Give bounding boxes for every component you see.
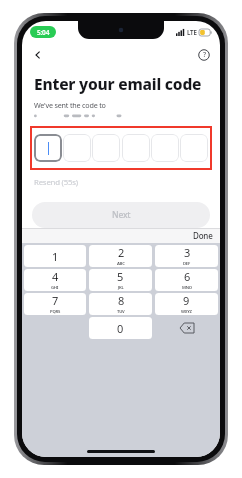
staticText: WXYZ [181, 309, 192, 315]
staticText: 1 [52, 249, 59, 264]
button[interactable]: Digit 5 [151, 134, 179, 162]
button[interactable]: 1 [24, 245, 86, 267]
staticText: PQRS [50, 309, 61, 315]
button[interactable]: Digit 1 [34, 134, 62, 162]
button[interactable]: Digit 3 [92, 134, 120, 162]
staticText: MNO [182, 285, 192, 291]
staticText: GHI [51, 285, 59, 291]
button[interactable]: Help [194, 45, 214, 65]
staticText: JKL [118, 285, 124, 291]
button[interactable]: Done [193, 230, 213, 241]
button[interactable]: Digit 2 [63, 134, 91, 162]
button[interactable]: Next [32, 202, 210, 228]
staticText: 5 [117, 269, 124, 284]
staticText: ABC [117, 261, 125, 267]
button[interactable]: 6 [155, 269, 218, 291]
button[interactable]: 9 [155, 293, 218, 315]
button[interactable]: 7 [24, 293, 86, 315]
staticText: Done [193, 230, 213, 241]
staticText: ? [203, 50, 206, 60]
staticText: TUV [117, 309, 125, 315]
button[interactable]: 8 [89, 293, 152, 315]
button[interactable]: Back [28, 45, 48, 65]
staticText: Enter your email code [34, 73, 202, 94]
staticText: LTE [187, 28, 197, 36]
staticText: 3 [184, 245, 191, 260]
button[interactable]: 0 [89, 317, 152, 339]
staticText: Next [112, 209, 131, 221]
staticText: DEF [183, 261, 191, 267]
staticText: 2 [118, 245, 125, 260]
button[interactable]: 2 [89, 245, 152, 267]
staticText: Resend (55s) [34, 177, 78, 188]
button[interactable]: 5 [89, 269, 152, 291]
staticText: We've sent the code to [34, 100, 106, 110]
button[interactable]: 3 [155, 245, 218, 267]
staticText: 4 [52, 269, 59, 284]
button[interactable]: Backspace [155, 316, 218, 340]
staticText: 0 [117, 321, 124, 336]
button[interactable]: Digit 6 [180, 134, 208, 162]
button[interactable]: Digit 4 [122, 134, 150, 162]
staticText: 9 [183, 293, 190, 308]
button[interactable]: 4 [24, 269, 86, 291]
staticText: 8 [118, 293, 125, 308]
staticText: 5:04 [37, 28, 50, 37]
staticText: 7 [52, 293, 59, 308]
staticText: 6 [184, 269, 191, 284]
